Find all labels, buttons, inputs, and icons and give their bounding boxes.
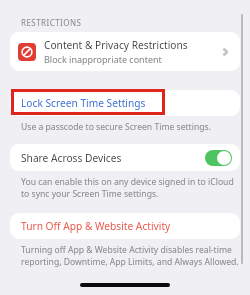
button[interactable]: Content & Privacy Restrictions — [10, 32, 240, 71]
button[interactable]: Turn Off App & Website Activity — [10, 213, 240, 239]
button[interactable]: Share Across Devices — [10, 144, 240, 171]
staticText: Content & Privacy Restrictions — [44, 38, 188, 52]
button[interactable]: Share Across Devices, on — [205, 150, 232, 166]
staticText: Block inappropriate content — [44, 53, 162, 65]
other: Open Content & Privacy Restrictions — [221, 47, 231, 57]
staticText: Lock Screen Time Settings — [21, 96, 146, 110]
staticText: You can enable this on any device signed… — [21, 176, 234, 199]
button[interactable]: Lock Screen Time Settings — [10, 90, 240, 116]
staticText: Use a passcode to secure Screen Time set… — [21, 121, 211, 133]
staticText: RESTRICTIONS — [21, 17, 82, 28]
staticText: Turn Off App & Website Activity — [21, 219, 171, 233]
staticText: Turning off App & Website Activity disab… — [21, 244, 239, 267]
staticText: Share Across Devices — [21, 151, 205, 165]
